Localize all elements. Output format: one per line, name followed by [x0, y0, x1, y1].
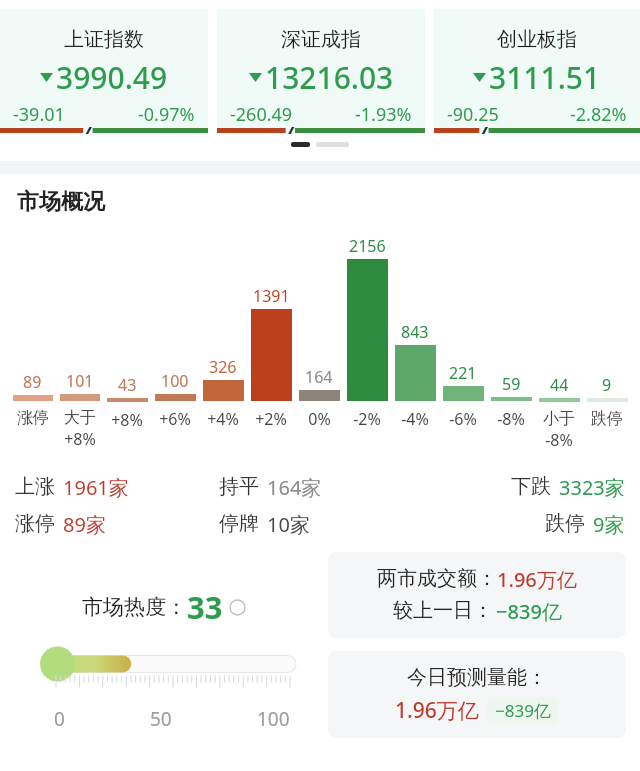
- staticText: 3111.51: [489, 57, 601, 98]
- button[interactable]: 今日预测量能：: [328, 651, 626, 738]
- staticText: 101: [66, 370, 94, 392]
- staticText: -8%: [545, 429, 573, 451]
- staticText: 89家: [63, 511, 106, 538]
- staticText: +2%: [255, 408, 287, 430]
- staticText: 10家: [267, 511, 310, 538]
- staticText: 停牌: [219, 511, 259, 536]
- staticText: 下跌: [511, 474, 551, 499]
- staticText: 2156: [349, 235, 386, 257]
- staticText: 1961家: [63, 474, 129, 501]
- staticText: -1.93%: [355, 102, 412, 127]
- button[interactable]: 两市成交额：: [328, 552, 626, 638]
- staticText: 59: [502, 373, 521, 395]
- staticText: 100: [161, 370, 189, 392]
- staticText: 9家: [593, 511, 625, 538]
- staticText: 市场热度：: [82, 594, 187, 620]
- staticText: 33: [187, 586, 223, 628]
- staticText: 0: [54, 706, 65, 732]
- staticText: -6%: [449, 408, 477, 430]
- other: 帮助说明: [229, 599, 246, 616]
- staticText: 小于: [543, 409, 575, 429]
- staticText: 今日预测量能：: [407, 665, 547, 690]
- staticText: 89: [23, 371, 42, 393]
- staticText: 13216.03: [265, 57, 394, 98]
- staticText: 1.96万亿: [497, 566, 577, 593]
- staticText: 大于: [64, 408, 96, 428]
- staticText: 上涨: [15, 474, 55, 499]
- staticText: 326: [209, 356, 237, 378]
- staticText: +4%: [207, 408, 239, 430]
- staticText: 创业板指: [497, 27, 577, 52]
- staticText: 上证指数: [64, 27, 144, 52]
- staticText: 较上一日：: [393, 598, 493, 623]
- button[interactable]: 深证成指: [217, 9, 425, 134]
- staticText: -90.25: [447, 102, 499, 127]
- button[interactable]: 上证指数: [0, 9, 208, 134]
- staticText: -39.01: [13, 102, 65, 127]
- staticText: 深证成指: [281, 27, 361, 52]
- button[interactable]: 创业板指: [434, 9, 640, 134]
- staticText: 1.96万亿: [395, 696, 479, 725]
- staticText: 50: [150, 706, 172, 732]
- staticText: 9: [602, 374, 612, 396]
- staticText: 44: [550, 374, 569, 396]
- staticText: 221: [449, 362, 477, 384]
- staticText: 持平: [219, 474, 259, 499]
- staticText: -0.97%: [138, 102, 195, 127]
- staticText: -2%: [353, 408, 381, 430]
- staticText: 跌停: [545, 511, 585, 536]
- staticText: 0%: [308, 408, 331, 430]
- staticText: 涨停: [17, 408, 49, 428]
- staticText: 涨停: [15, 511, 55, 536]
- staticText: 1391: [253, 285, 290, 307]
- staticText: −839亿: [495, 699, 551, 722]
- staticText: 164家: [267, 474, 322, 501]
- staticText: 164: [305, 366, 333, 388]
- button[interactable]: 市场热度：: [14, 552, 314, 738]
- staticText: -2.82%: [570, 102, 627, 127]
- staticText: -4%: [401, 408, 429, 430]
- staticText: 3990.49: [56, 57, 168, 98]
- staticText: 843: [401, 321, 429, 343]
- staticText: +8%: [111, 409, 143, 431]
- staticText: -260.49: [230, 102, 293, 127]
- staticText: +8%: [64, 428, 96, 450]
- staticText: -8%: [497, 408, 525, 430]
- staticText: 100: [257, 706, 290, 732]
- staticText: 市场概况: [17, 188, 105, 216]
- staticText: 43: [118, 374, 137, 396]
- staticText: 两市成交额：: [377, 566, 497, 591]
- staticText: 3323家: [559, 474, 625, 501]
- staticText: 跌停: [591, 409, 623, 429]
- staticText: +6%: [159, 408, 191, 430]
- staticText: −839亿: [496, 598, 562, 625]
